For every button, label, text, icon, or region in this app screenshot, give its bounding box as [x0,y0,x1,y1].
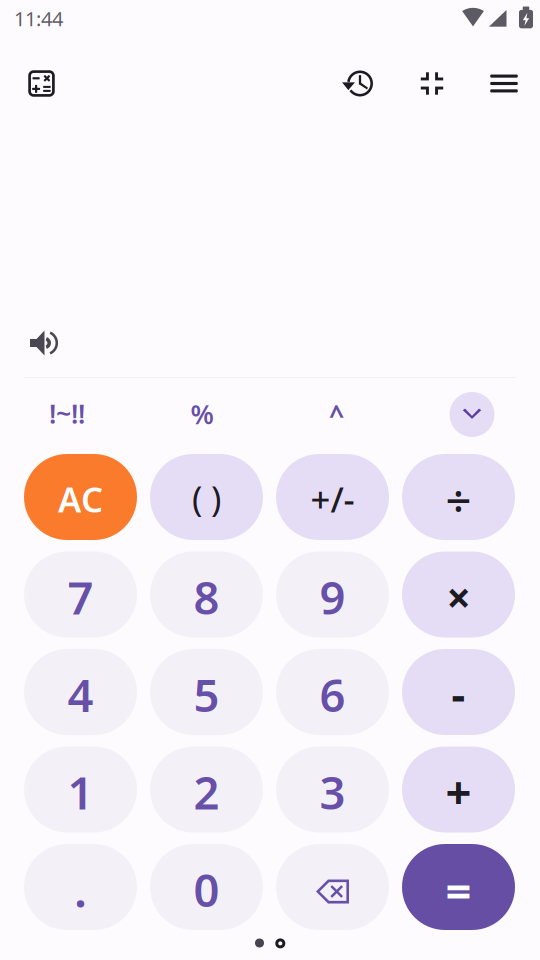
staticText: !~!! [49,396,85,431]
button[interactable]: 9 [276,551,389,637]
staticText: 0 [193,859,219,920]
staticText: 3 [319,762,345,822]
button[interactable]: % [145,386,258,442]
staticText: 1 [67,762,93,822]
button[interactable]: + [402,746,515,832]
staticText: 5 [193,664,219,725]
button[interactable]: - [402,649,515,735]
button[interactable]: 2 [150,746,263,832]
button[interactable]: ^ [280,386,393,442]
staticText: 6 [319,664,345,725]
button[interactable]: Collapse keypad [412,63,452,103]
button[interactable]: 1 [24,746,137,832]
button[interactable]: 3 [276,746,389,832]
button[interactable]: ÷ [402,454,515,540]
staticText: ^ [329,397,344,432]
staticText: 9 [319,567,345,627]
button[interactable]: History [340,63,380,103]
staticText: + [445,761,471,822]
button[interactable]: 4 [24,649,137,735]
button[interactable]: × [402,551,515,637]
staticText: 8 [193,567,219,627]
staticText: +/- [310,476,354,522]
staticText: ( ) [192,475,221,521]
button[interactable]: 7 [24,551,137,637]
staticText: 7 [67,567,93,627]
staticText: - [451,666,465,722]
staticText: . [74,863,86,919]
button[interactable]: +/- [276,454,389,540]
button[interactable]: More functions [415,386,528,442]
button[interactable]: = [402,844,515,930]
staticText: = [445,860,471,920]
staticText: 11:44 [14,5,63,32]
button[interactable]: AC [24,454,137,540]
button[interactable]: Backspace [276,844,389,930]
button[interactable]: ( ) [150,454,263,540]
staticText: 2 [193,762,219,822]
staticText: 4 [67,664,93,725]
button[interactable]: 6 [276,649,389,735]
button[interactable]: 0 [150,844,263,930]
button[interactable]: Speak result [29,328,61,358]
staticText: ÷ [445,469,471,530]
staticText: % [190,396,213,432]
staticText: × [446,569,470,625]
button[interactable]: 8 [150,551,263,637]
staticText: AC [58,476,103,522]
button[interactable]: Calculator [21,63,61,103]
button[interactable]: !~!! [10,385,123,441]
button[interactable]: . [24,844,137,930]
button[interactable]: Menu [484,63,524,103]
button[interactable]: 5 [150,649,263,735]
